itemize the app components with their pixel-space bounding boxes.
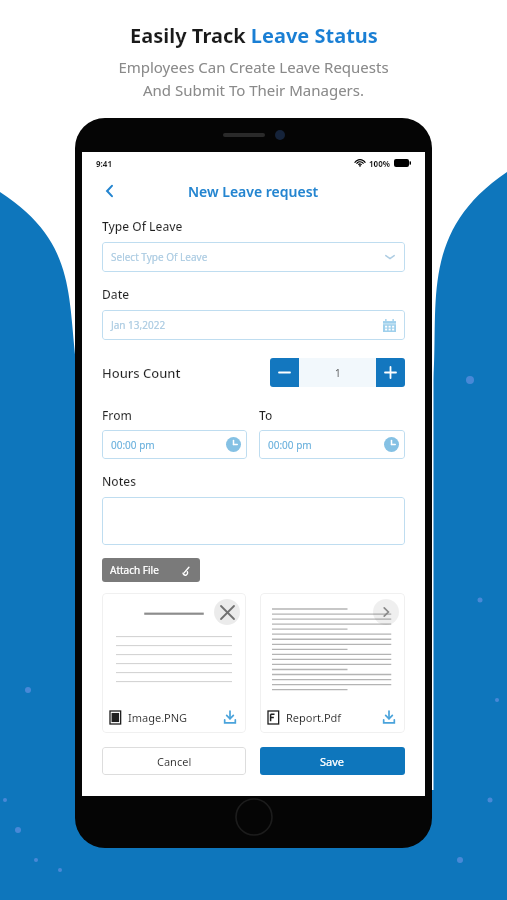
- staticText: 9:41: [96, 158, 112, 169]
- button[interactable]: [102, 497, 405, 545]
- staticText: 00:00 pm: [111, 438, 155, 452]
- staticText: From: [102, 407, 132, 423]
- staticText: To: [259, 407, 273, 423]
- button[interactable]: Back: [98, 179, 122, 203]
- staticText: Select Type Of Leave: [111, 250, 208, 264]
- button[interactable]: Remove attachment: [102, 593, 246, 733]
- staticText: Type Of Leave: [102, 218, 183, 234]
- staticText: Employees Can Create Leave Requests And …: [118, 57, 389, 100]
- staticText: Jan 13,2022: [111, 318, 166, 332]
- staticText: Hours Count: [102, 364, 181, 382]
- button[interactable]: Attach File: [102, 558, 200, 582]
- staticText: Notes: [102, 473, 136, 489]
- button[interactable]: Increase: [376, 358, 405, 387]
- staticText: Image.PNG: [128, 710, 188, 725]
- staticText: Save: [320, 754, 345, 769]
- staticText: New Leave request: [188, 182, 319, 201]
- button[interactable]: 00:00 pm: [259, 430, 405, 459]
- button[interactable]: Select Type Of Leave: [102, 242, 405, 272]
- button[interactable]: Cancel: [102, 747, 246, 775]
- staticText: 00:00 pm: [268, 438, 312, 452]
- button[interactable]: Next attachment: [260, 593, 405, 733]
- button[interactable]: Decrease: [270, 358, 299, 387]
- button[interactable]: Next attachment: [373, 599, 399, 625]
- button[interactable]: Jan 13,2022: [102, 310, 405, 340]
- button[interactable]: Download Report.Pdf: [381, 709, 397, 725]
- staticText: Cancel: [157, 754, 192, 769]
- button[interactable]: Save: [260, 747, 405, 775]
- staticText: 1: [335, 366, 341, 380]
- button[interactable]: Remove attachment: [214, 599, 240, 625]
- button[interactable]: 00:00 pm: [102, 430, 247, 459]
- button[interactable]: Download Image.PNG: [222, 709, 238, 725]
- staticText: Report.Pdf: [286, 710, 342, 725]
- staticText: Easily Track Leave Status: [130, 22, 378, 49]
- staticText: Date: [102, 286, 130, 302]
- staticText: 100%: [369, 158, 390, 169]
- staticText: Attach File: [110, 563, 159, 577]
